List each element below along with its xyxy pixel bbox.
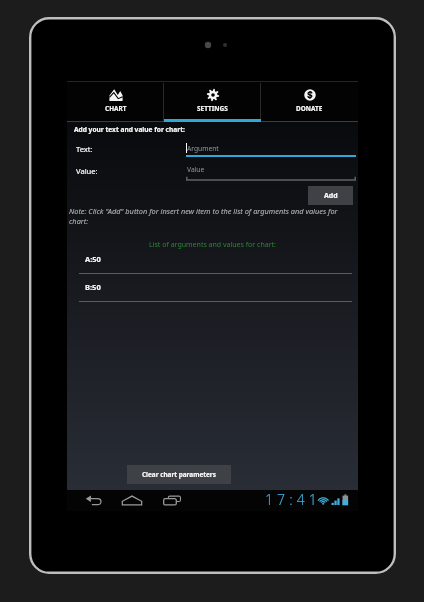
staticText: Text: [76,144,93,154]
button[interactable]: Home [119,490,145,511]
button[interactable]: SETTINGS [164,81,261,122]
button[interactable]: Back [81,490,107,511]
staticText: A:50 [85,254,101,264]
staticText: Value: [76,166,98,176]
button[interactable]: A:50 [67,252,358,280]
button[interactable]: Clear chart parameters [127,465,231,484]
staticText: Add your text and value for chart: [74,125,185,134]
button[interactable]: B:50 [67,280,358,308]
staticText: Clear chart parameters [142,470,216,479]
staticText: SETTINGS [197,104,228,113]
button[interactable]: Recent apps [159,490,185,511]
staticText: Value [187,165,205,174]
button[interactable]: CHART [67,81,164,122]
staticText: Add [324,191,338,201]
staticText: CHART [105,104,127,113]
button[interactable]: DONATE [261,81,358,122]
button[interactable]: Add [308,186,353,205]
staticText: Argument [187,144,219,153]
staticText: B:50 [85,282,101,292]
staticText: 17:41 [265,490,321,509]
staticText: List of arguments and values for chart: [67,240,358,250]
staticText: DONATE [296,104,323,113]
staticText: Note: Click "Add" button for insert new … [69,206,351,226]
